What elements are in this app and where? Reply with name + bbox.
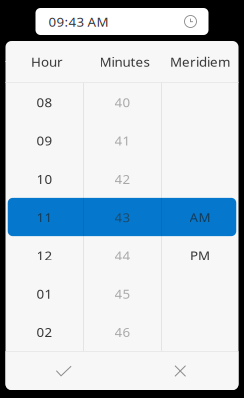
button[interactable]: 09 (5, 121, 238, 160)
staticText: Hour (31, 53, 63, 70)
staticText: 09 (36, 132, 52, 149)
staticText: 09:43 AM (48, 13, 108, 30)
staticText: 08 (36, 93, 52, 111)
staticText: PM (190, 246, 210, 264)
staticText: 44 (114, 246, 130, 264)
staticText: 42 (114, 170, 130, 188)
button[interactable]: 12 (5, 236, 238, 274)
staticText: Meridiem (170, 53, 230, 70)
button[interactable]: 10 (5, 160, 238, 198)
staticText: 11 (36, 208, 52, 226)
staticText: Minutes (99, 53, 149, 70)
button[interactable]: Confirm (5, 352, 122, 390)
button[interactable]: 01 (5, 274, 238, 313)
staticText: 01 (36, 285, 52, 302)
button[interactable]: 11 (5, 198, 238, 236)
staticText: 43 (114, 208, 130, 226)
staticText: 45 (114, 285, 130, 302)
staticText: 10 (36, 170, 52, 188)
button[interactable]: 08 (5, 83, 238, 121)
staticText: AM (189, 208, 210, 226)
staticText: 12 (36, 246, 52, 264)
staticText: 46 (114, 323, 130, 341)
button[interactable]: 02 (5, 313, 238, 351)
staticText: 02 (36, 323, 52, 341)
staticText: 41 (114, 132, 130, 149)
staticText: 40 (114, 93, 130, 111)
button[interactable]: Cancel (122, 352, 238, 390)
button[interactable]: 09:43 AM (35, 8, 208, 35)
